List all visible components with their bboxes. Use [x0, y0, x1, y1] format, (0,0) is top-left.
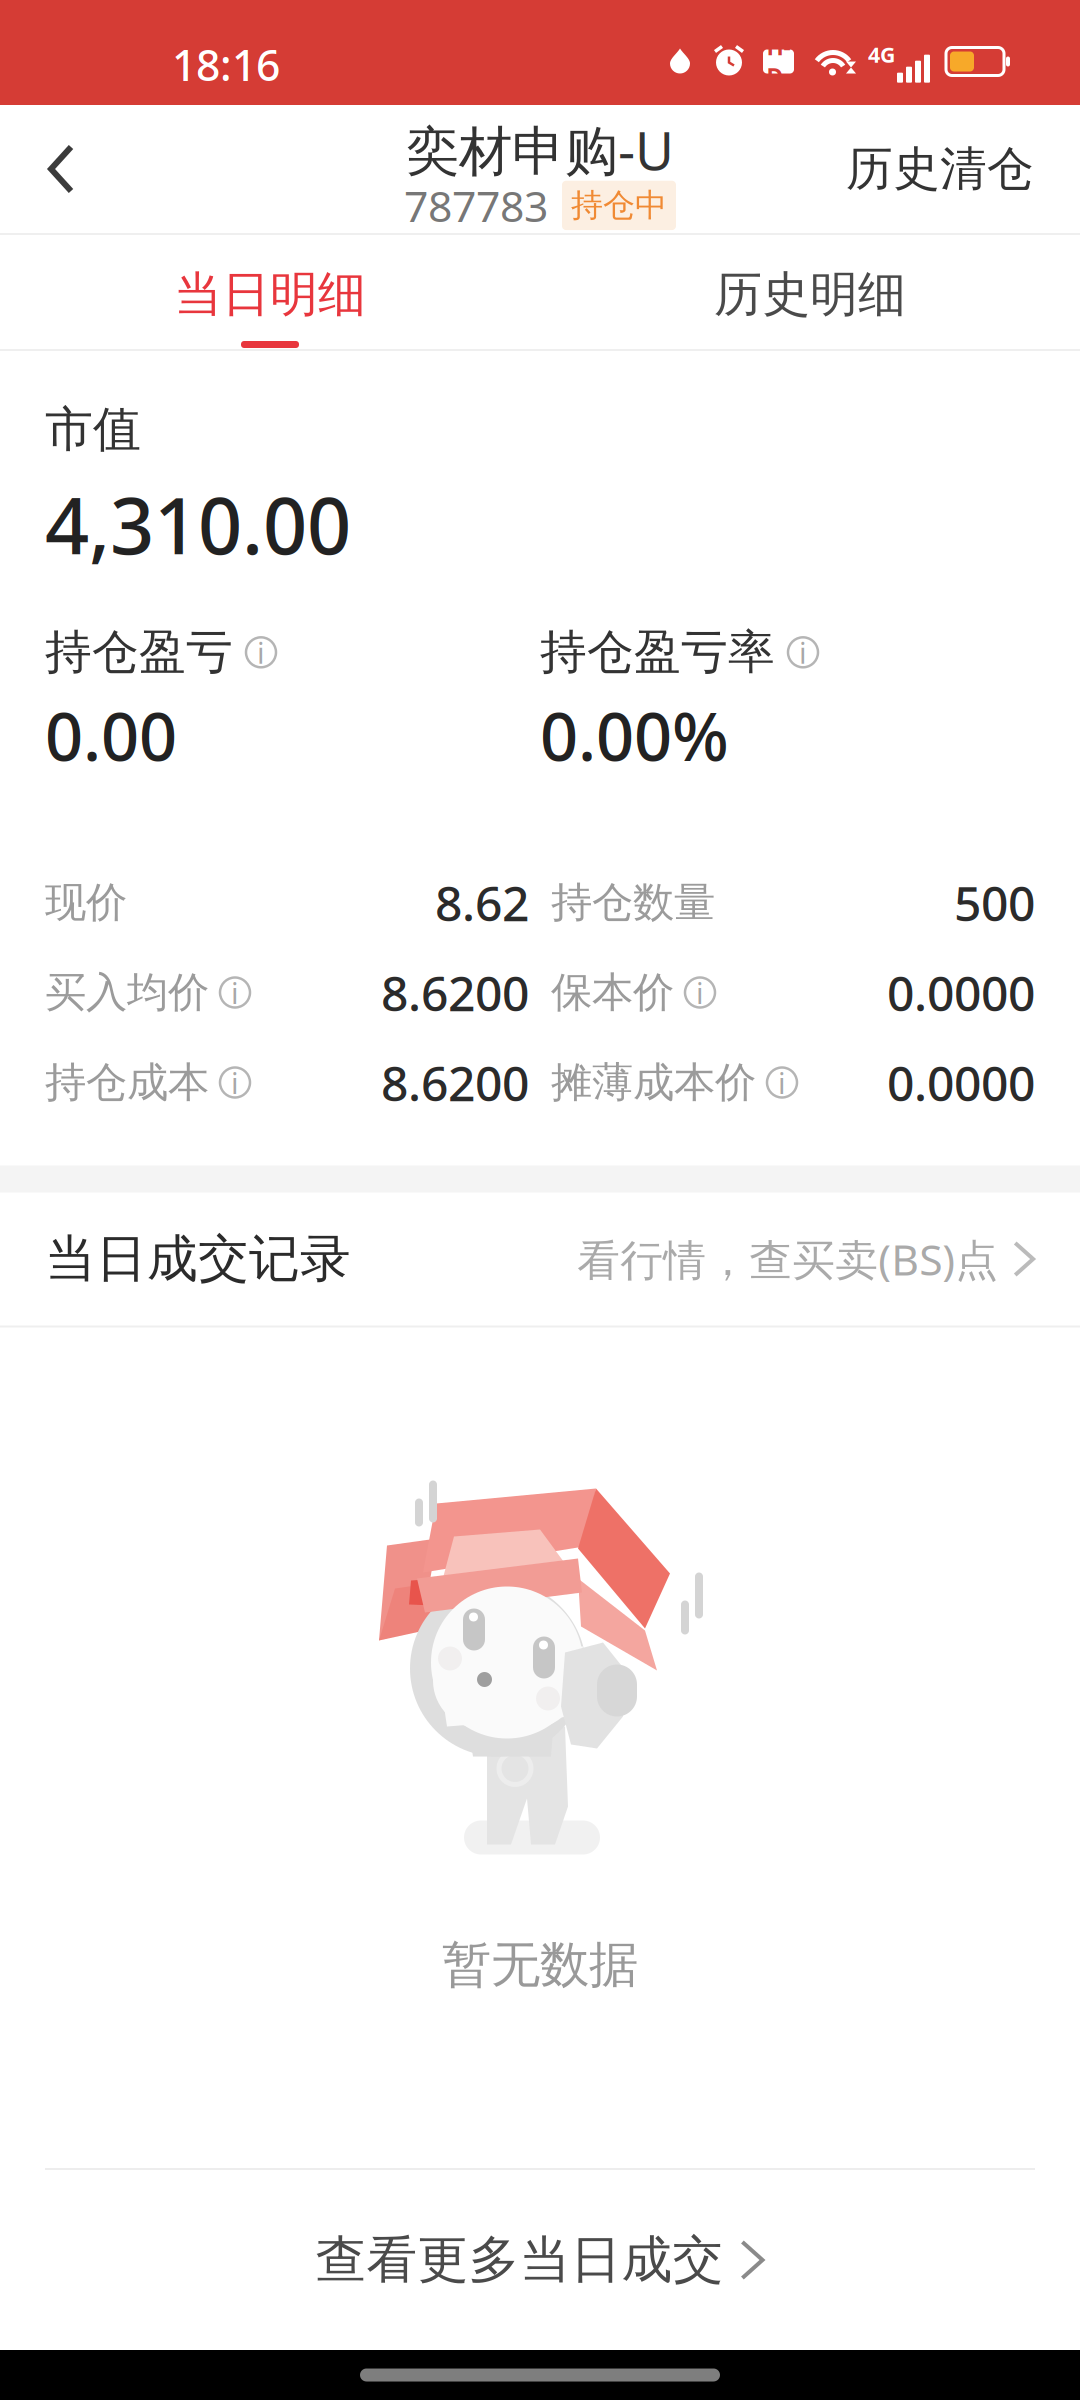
staticText: i [231, 973, 239, 1012]
staticText: 持仓盈亏 [45, 624, 233, 681]
staticText: HD [766, 31, 790, 92]
button[interactable]: 当日明细 [0, 235, 540, 349]
staticText: 奕材申购-U [406, 114, 674, 185]
button[interactable]: 当日成交记录 [0, 1192, 1080, 1325]
staticText: 市值 [45, 400, 141, 459]
staticText: 当日明细 [174, 265, 366, 324]
staticText: 查看更多当日成交 [315, 2229, 723, 2291]
staticText: i [696, 973, 704, 1012]
staticText: 历史明细 [714, 265, 906, 324]
staticText: 4G [868, 40, 895, 69]
staticText: 8.6200 [381, 961, 529, 1024]
staticText: 0.00% [540, 691, 729, 779]
button[interactable]: Back [0, 105, 124, 233]
staticText: 保本价 [551, 967, 674, 1018]
staticText: 摊薄成本价 [551, 1057, 756, 1108]
staticText: 暂无数据 [442, 1934, 638, 1995]
staticText: 当日成交记录 [45, 1228, 351, 1290]
staticText: i [799, 633, 807, 672]
staticText: 0.0000 [887, 961, 1035, 1024]
staticText: 4,310.00 [45, 473, 351, 576]
staticText: 持仓盈亏率 [540, 624, 775, 681]
staticText: 现价 [45, 877, 127, 928]
staticText: 787783 [404, 177, 548, 234]
staticText: i [231, 1063, 239, 1102]
button[interactable]: 历史清仓 [800, 105, 1080, 233]
button[interactable]: 历史明细 [540, 235, 1080, 349]
staticText: 0.0000 [887, 1051, 1035, 1114]
staticText: 500 [954, 871, 1035, 934]
staticText: 看行情，查买卖(BS)点 [577, 1231, 998, 1287]
staticText: 历史清仓 [846, 140, 1034, 198]
staticText: 持仓成本 [45, 1057, 209, 1108]
button[interactable]: 查看更多当日成交 [0, 2170, 1080, 2350]
staticText: 8.6200 [381, 1051, 529, 1114]
staticText: 买入均价 [45, 967, 209, 1018]
staticText: i [257, 633, 265, 672]
staticText: 18:16 [172, 36, 280, 93]
staticText: 持仓中 [571, 186, 667, 225]
staticText: i [778, 1063, 786, 1102]
staticText: 8.62 [435, 871, 529, 934]
staticText: 持仓数量 [551, 877, 715, 928]
staticText: 0.00 [45, 691, 177, 779]
